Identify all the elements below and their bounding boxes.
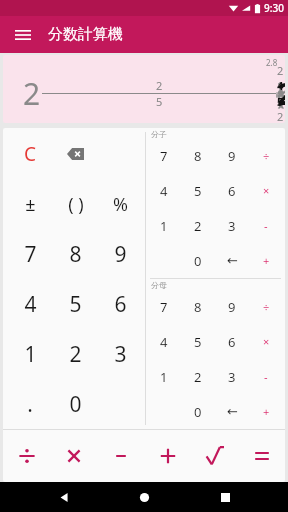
staticText: - — [264, 218, 268, 233]
button[interactable]: Plus — [249, 243, 283, 278]
button[interactable]: 1 — [7, 329, 53, 379]
staticText: 7 — [160, 298, 168, 316]
staticText: 分母 — [151, 280, 167, 290]
button[interactable]: Divide — [249, 290, 283, 324]
button[interactable]: Divide — [3, 430, 50, 482]
button[interactable]: 0 — [181, 394, 215, 429]
button[interactable]: 0 — [53, 379, 98, 429]
button[interactable]: Divide — [249, 139, 283, 173]
button[interactable]: Back — [47, 482, 81, 512]
button[interactable]: Recents — [208, 482, 242, 512]
staticText: 8 — [69, 240, 82, 269]
button[interactable]: 2 — [181, 208, 215, 243]
button[interactable]: 7 — [146, 139, 181, 173]
staticText: 9:30 — [264, 1, 284, 15]
button[interactable]: Equals — [238, 430, 285, 482]
button[interactable]: 2.8 — [3, 55, 285, 123]
button[interactable]: 5 — [181, 173, 215, 208]
button[interactable]: 9 — [215, 139, 249, 173]
staticText: 7 — [24, 240, 37, 269]
button[interactable]: Backspace — [53, 128, 98, 179]
staticText: 6 — [114, 290, 127, 319]
button[interactable]: Home — [127, 482, 161, 512]
button[interactable]: Menu — [9, 21, 37, 49]
button[interactable]: 1 — [146, 359, 181, 394]
staticText: 分子 — [151, 129, 167, 139]
staticText: 2 — [23, 73, 41, 114]
staticText: 7 — [160, 147, 168, 165]
staticText: ← — [227, 404, 238, 419]
button[interactable]: ± — [7, 179, 53, 229]
staticText: 4 — [24, 290, 37, 319]
staticText: ÷ — [263, 149, 270, 164]
staticText: 8 — [194, 147, 202, 165]
staticText: ÷ — [263, 300, 270, 315]
staticText: C — [24, 141, 37, 167]
staticText: 1 — [24, 340, 37, 369]
staticText: - — [264, 369, 268, 384]
button[interactable]: 8 — [181, 139, 215, 173]
button[interactable]: ← — [215, 394, 249, 429]
button[interactable]: 3 — [98, 329, 143, 379]
staticText: 4 — [160, 333, 168, 351]
staticText: 2 — [194, 368, 202, 386]
button[interactable]: 4 — [146, 324, 181, 359]
button[interactable]: 1 — [146, 208, 181, 243]
button[interactable]: 6 — [215, 173, 249, 208]
button[interactable]: 0 — [181, 243, 215, 278]
button[interactable]: 8 — [181, 290, 215, 324]
staticText: 2 — [194, 217, 202, 235]
button[interactable]: 9 — [98, 229, 143, 279]
button[interactable]: Multiply — [249, 324, 283, 359]
staticText: 8 — [194, 298, 202, 316]
staticText: 5 — [194, 333, 202, 351]
button[interactable]: 3 — [215, 208, 249, 243]
button[interactable]: Square root — [191, 430, 238, 482]
staticText: 0 — [194, 403, 202, 421]
button[interactable]: 7 — [7, 229, 53, 279]
staticText: 1 — [160, 368, 168, 386]
button[interactable]: C — [7, 128, 53, 179]
staticText: . — [27, 390, 33, 419]
button[interactable]: 6 — [98, 279, 143, 329]
staticText: 9 — [228, 298, 236, 316]
staticText: 5 — [194, 182, 202, 200]
staticText: 6 — [228, 182, 236, 200]
staticText: 2 — [156, 78, 163, 93]
staticText: 3 — [114, 340, 127, 369]
button[interactable]: % — [98, 179, 143, 229]
button[interactable]: 4 — [146, 173, 181, 208]
button[interactable]: Minus — [249, 359, 283, 394]
staticText: + — [263, 404, 270, 419]
button[interactable]: ← — [215, 243, 249, 278]
button[interactable]: Minus — [249, 208, 283, 243]
staticText: 6 — [228, 333, 236, 351]
button[interactable]: 7 — [146, 290, 181, 324]
button[interactable]: 5 — [53, 279, 98, 329]
button[interactable]: 8 — [53, 229, 98, 279]
button[interactable]: . — [7, 379, 53, 429]
button[interactable]: Minus — [97, 430, 144, 482]
staticText: ← — [227, 253, 238, 268]
button[interactable]: 6 — [215, 324, 249, 359]
button[interactable]: 5 — [181, 324, 215, 359]
button[interactable]: 4 — [7, 279, 53, 329]
staticText: 9 — [228, 147, 236, 165]
button[interactable]: Plus — [144, 430, 191, 482]
staticText: + — [263, 253, 270, 268]
staticText: 5 — [156, 94, 163, 109]
staticText: × — [263, 334, 270, 349]
button[interactable]: 9 — [215, 290, 249, 324]
button[interactable]: Multiply — [50, 430, 97, 482]
staticText: 4 — [160, 182, 168, 200]
button[interactable]: 2 — [181, 359, 215, 394]
button[interactable]: ( ) — [53, 179, 98, 229]
staticText: 2.8 — [266, 57, 278, 68]
button[interactable]: Multiply — [249, 173, 283, 208]
button[interactable]: 2 — [53, 329, 98, 379]
staticText: 0 — [69, 390, 82, 419]
button[interactable]: Plus — [249, 394, 283, 429]
staticText: ± — [25, 192, 36, 217]
button[interactable]: 3 — [215, 359, 249, 394]
staticText: 3 — [228, 217, 236, 235]
